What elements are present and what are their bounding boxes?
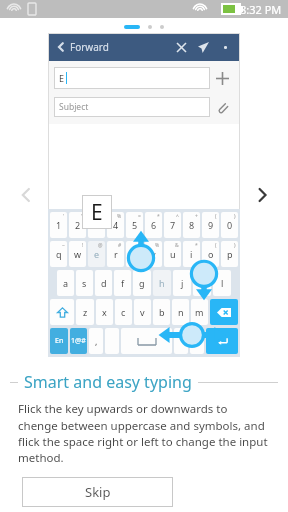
button[interactable]: En — [50, 328, 68, 354]
button[interactable]: n — [172, 299, 189, 325]
button[interactable]: q — [50, 241, 67, 267]
staticText: @ — [98, 242, 103, 249]
button[interactable]: v — [134, 299, 151, 325]
button[interactable]: Next — [250, 183, 274, 207]
button[interactable]: 0 — [221, 212, 238, 238]
staticText: 8 — [189, 219, 195, 231]
button[interactable]: Add recipient — [210, 66, 234, 90]
button[interactable]: 3 — [88, 212, 105, 238]
button[interactable]: z — [76, 299, 94, 325]
button[interactable]: a — [57, 270, 74, 296]
staticText: 0 — [227, 219, 233, 231]
button[interactable]: . — [190, 328, 204, 354]
staticText: q — [56, 248, 62, 260]
staticText: % — [117, 213, 122, 220]
button[interactable]: s — [76, 270, 93, 296]
staticText: ! — [82, 242, 84, 249]
button[interactable]: f — [114, 270, 131, 296]
staticText: - — [101, 213, 103, 220]
staticText: m — [195, 306, 204, 318]
staticText: E — [91, 198, 103, 227]
button[interactable]: d — [95, 270, 112, 296]
staticText: Smart and easy typing — [24, 371, 192, 393]
staticText: d — [101, 277, 107, 289]
staticText: u — [170, 248, 176, 260]
staticText: b — [159, 306, 165, 318]
staticText: ( — [215, 213, 217, 220]
staticText: a — [63, 277, 69, 289]
button[interactable]: t — [126, 241, 143, 267]
button[interactable]: c — [115, 299, 132, 325]
staticText: 5 — [132, 219, 138, 231]
button[interactable]: Enter — [206, 328, 238, 354]
button[interactable]: r — [107, 241, 124, 267]
button[interactable]: g — [133, 270, 151, 296]
button[interactable]: More options — [216, 38, 234, 56]
staticText: y — [151, 248, 156, 260]
button[interactable]: w — [69, 241, 86, 267]
button[interactable]: l — [213, 270, 231, 296]
button[interactable]: e — [88, 241, 105, 267]
staticText: p — [227, 248, 233, 260]
button[interactable]: b — [153, 299, 170, 325]
staticText: k — [200, 277, 205, 289]
button[interactable]: Space — [121, 328, 172, 354]
button[interactable]: k — [193, 270, 211, 296]
staticText: & — [175, 242, 179, 249]
button[interactable]: 9 — [202, 212, 219, 238]
staticText: n — [178, 306, 184, 318]
button[interactable]: , — [89, 328, 103, 354]
staticText: E — [59, 72, 65, 84]
button[interactable]: h — [153, 270, 171, 296]
button[interactable]: i — [183, 241, 200, 267]
button[interactable]: Attach file — [210, 95, 234, 119]
staticText: z — [83, 306, 88, 318]
button[interactable]: Backspace — [210, 299, 238, 325]
button[interactable]: 5 — [126, 212, 143, 238]
staticText: o — [208, 248, 214, 260]
staticText: " — [81, 213, 84, 220]
staticText: 6 — [151, 219, 157, 231]
button[interactable]: Subject — [54, 97, 210, 117]
staticText: e — [94, 248, 100, 260]
button[interactable]: 4 — [107, 212, 124, 238]
button[interactable]: Shift — [50, 299, 74, 325]
staticText: ( — [215, 242, 217, 249]
staticText: r — [114, 248, 118, 260]
staticText: + — [195, 213, 198, 220]
button[interactable]: y — [145, 241, 162, 267]
button[interactable]: 6 — [145, 212, 162, 238]
button[interactable]: m — [191, 299, 208, 325]
staticText: 1@# — [71, 336, 86, 346]
staticText: s — [82, 277, 87, 289]
button[interactable]: Send — [194, 38, 212, 56]
staticText: % — [155, 242, 160, 249]
staticText: , — [95, 335, 98, 347]
button[interactable]: 2 — [69, 212, 86, 238]
button[interactable]: x — [96, 299, 113, 325]
button[interactable]: o — [202, 241, 219, 267]
button[interactable]: u — [164, 241, 181, 267]
staticText: # — [118, 242, 122, 249]
button[interactable]: 8 — [183, 212, 200, 238]
staticText: ' — [63, 213, 65, 220]
button[interactable]: 1 — [50, 212, 67, 238]
button[interactable]: Close — [172, 38, 190, 56]
staticText: f — [121, 277, 125, 289]
button[interactable]: E — [54, 67, 210, 89]
staticText: 3 — [94, 219, 100, 231]
button[interactable]: Forward — [54, 40, 111, 54]
button[interactable]: j — [173, 270, 191, 296]
button[interactable]: p — [221, 241, 238, 267]
button[interactable]: 1@# — [70, 328, 87, 354]
button[interactable]: Previous — [14, 183, 38, 207]
button[interactable]: Skip — [22, 477, 173, 507]
staticText: 2 — [75, 219, 81, 231]
staticText: 8:32 PM — [240, 2, 282, 17]
staticText: En — [55, 336, 64, 346]
button[interactable]: 7 — [164, 212, 181, 238]
staticText: v — [140, 306, 145, 318]
staticText: Skip — [85, 483, 111, 501]
button[interactable] — [174, 328, 188, 354]
